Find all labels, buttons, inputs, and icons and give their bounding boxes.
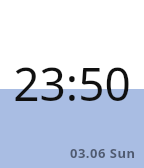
staticText: 03.06 Sun (70, 144, 136, 162)
button[interactable] (0, 89, 144, 168)
staticText: 23:50 (0, 52, 144, 115)
button[interactable]: 23:50 (0, 52, 144, 115)
button[interactable]: Date 03.06 Sunday (70, 144, 136, 162)
